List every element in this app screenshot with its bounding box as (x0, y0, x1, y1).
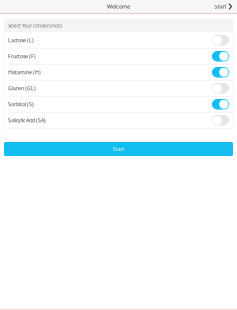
staticText: Select Your Intolerances (8, 23, 62, 29)
staticText: Sorbitol (S) (8, 101, 34, 108)
staticText: Start (112, 145, 124, 153)
button[interactable]: Sorbitol (S) (4, 96, 233, 112)
staticText: Gluten (GL) (8, 85, 36, 92)
button[interactable]: Gluten (GL) (4, 80, 233, 96)
button[interactable]: Fructose (F) (4, 48, 233, 64)
button[interactable]: Histamine (H) (4, 64, 233, 80)
button[interactable]: Start (208, 0, 237, 13)
button[interactable]: Salicylic Acid (SA) (4, 112, 233, 128)
staticText: Salicylic Acid (SA) (8, 117, 46, 124)
staticText: Lactose (L) (8, 37, 34, 44)
staticText: Fructose (F) (8, 53, 36, 60)
staticText: Welcome (107, 3, 130, 10)
button[interactable]: Lactose (L) (4, 32, 233, 48)
staticText: Start (214, 3, 226, 10)
button[interactable]: Start (4, 142, 233, 156)
staticText: Histamine (H) (8, 69, 41, 76)
